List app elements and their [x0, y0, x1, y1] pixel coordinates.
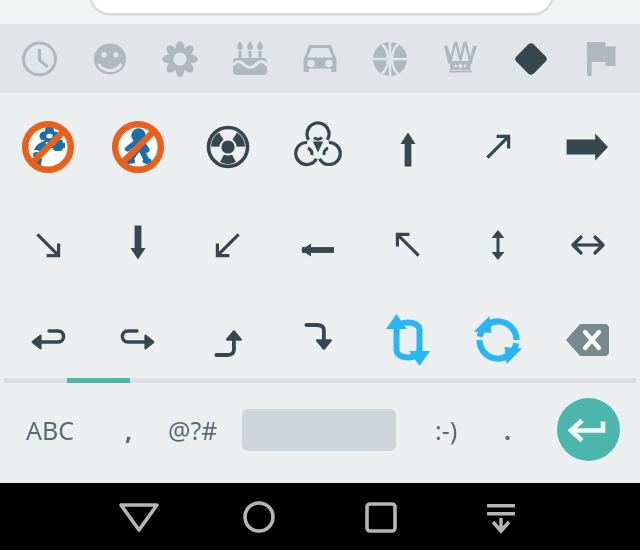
button[interactable]: Leftwards arrow with hook — [3, 290, 93, 382]
staticText: :-) — [435, 413, 458, 447]
button[interactable]: Hide keyboard — [461, 483, 541, 550]
button[interactable]: Arrow pointing rightwards then curving u… — [183, 290, 273, 382]
button[interactable]: Enter — [557, 398, 620, 461]
button[interactable]: Left arrow — [273, 194, 363, 286]
button[interactable]: Backspace — [543, 290, 633, 382]
button[interactable]: Up-left arrow — [363, 194, 453, 286]
button[interactable]: Back — [99, 483, 179, 550]
button[interactable]: Up-right arrow — [453, 98, 543, 190]
button[interactable]: Activities — [356, 24, 427, 93]
staticText: , — [125, 413, 133, 447]
button[interactable]: No pedestrians — [93, 98, 183, 190]
button[interactable]: Up arrow — [363, 98, 453, 190]
button[interactable]: Smileys and people — [72, 24, 143, 93]
button[interactable]: Food and drink — [214, 24, 285, 93]
button[interactable]: @?# — [163, 405, 223, 455]
button[interactable]: Recent apps — [341, 483, 421, 550]
staticText: @?# — [168, 413, 218, 447]
button[interactable]: Radioactive — [183, 98, 273, 190]
button[interactable]: Biohazard — [273, 98, 363, 190]
button[interactable]: Down-left arrow — [183, 194, 273, 286]
button[interactable]: Symbols — [498, 24, 569, 93]
button[interactable]: Non-potable water — [3, 98, 93, 190]
button[interactable]: Up-down arrow — [453, 194, 543, 286]
button[interactable]: Left-right arrow — [543, 194, 633, 286]
button[interactable]: Rightwards arrow with hook — [93, 290, 183, 382]
button[interactable]: , — [104, 405, 154, 455]
button[interactable]: Down arrow — [93, 194, 183, 286]
button[interactable]: Arrow pointing rightwards then curving d… — [273, 290, 363, 382]
button[interactable]: Counterclockwise arrows — [453, 290, 543, 382]
button[interactable]: Home — [219, 483, 299, 550]
button[interactable]: :-) — [416, 405, 476, 455]
button[interactable]: Clockwise vertical arrows — [363, 290, 453, 382]
button[interactable]: Flags — [569, 24, 640, 93]
staticText: . — [504, 413, 512, 447]
button[interactable]: Animals and nature — [143, 24, 214, 93]
button[interactable]: Travel and places — [285, 24, 356, 93]
button[interactable]: . — [483, 405, 533, 455]
button[interactable]: Recently used — [0, 24, 72, 93]
staticText: ABC — [26, 413, 75, 447]
button[interactable]: ABC — [10, 405, 90, 455]
button[interactable]: Down-right arrow — [3, 194, 93, 286]
button[interactable]: Objects — [427, 24, 498, 93]
button[interactable]: Right arrow — [543, 98, 633, 190]
